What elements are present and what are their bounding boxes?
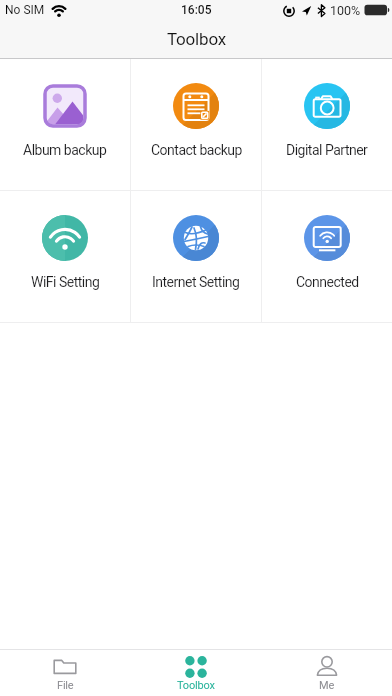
staticText: WiFi Setting [31,274,100,290]
staticText: Internet Setting [152,274,240,290]
button[interactable]: Contact backup [131,59,261,190]
staticText: 100% [330,3,361,18]
button[interactable]: Toolbox [130,650,261,696]
button[interactable]: File [0,650,130,696]
staticText: Me [319,679,335,692]
button[interactable]: Album backup [0,59,130,190]
button[interactable]: Connected [262,191,392,322]
button[interactable]: Digital Partner [262,59,392,190]
staticText: File [57,679,74,692]
staticText: Toolbox [167,29,226,49]
button[interactable]: Internet Setting [131,191,261,322]
staticText: Toolbox [177,679,215,692]
staticText: Connected [296,274,359,290]
button[interactable]: Me [261,650,392,696]
staticText: Contact backup [151,142,242,158]
staticText: No SIM [5,3,45,17]
staticText: Digital Partner [286,142,368,158]
button[interactable]: WiFi Setting [0,191,130,322]
staticText: 16:05 [181,3,212,17]
staticText: Album backup [23,142,107,158]
